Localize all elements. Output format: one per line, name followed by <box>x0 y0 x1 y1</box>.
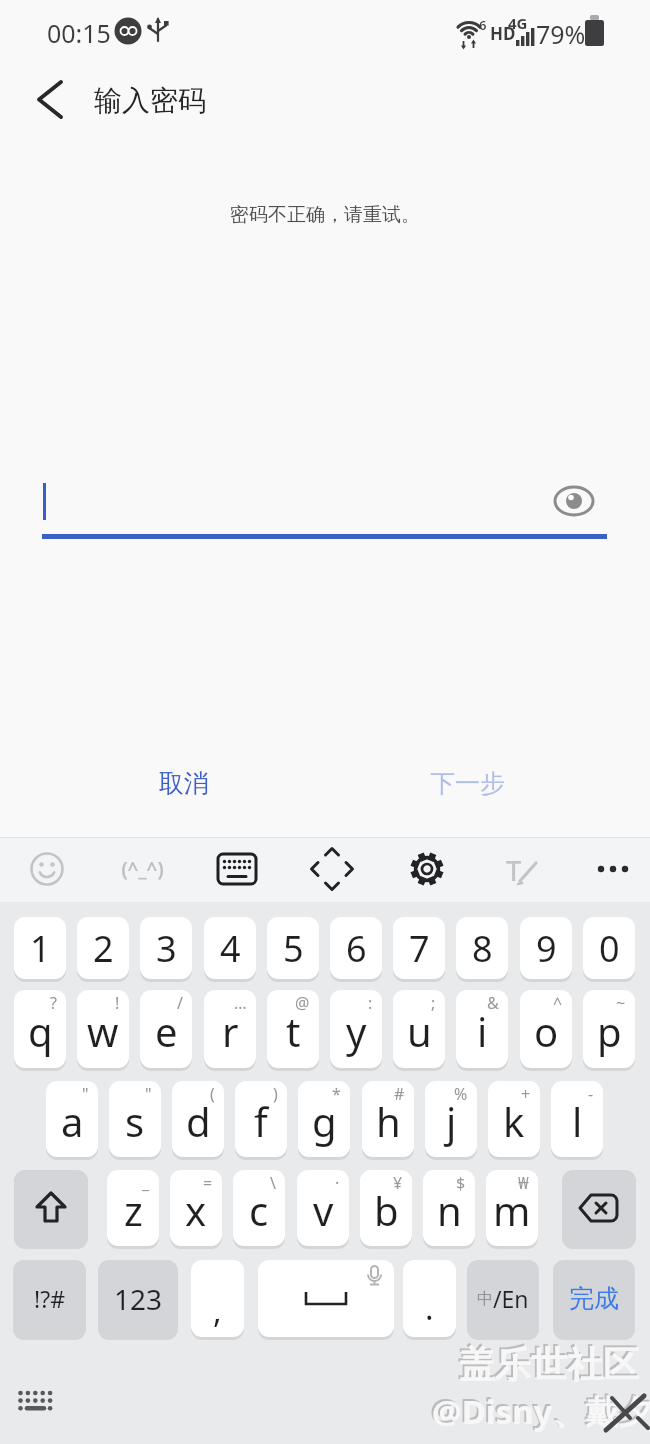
staticText: 密码不正确，请重试。 <box>230 203 420 227</box>
button[interactable]: q <box>14 990 66 1068</box>
staticText: 取消 <box>159 768 209 799</box>
button[interactable] <box>14 1170 88 1246</box>
button[interactable]: 完成 <box>553 1260 635 1337</box>
staticText: (^_^) <box>121 856 164 882</box>
button[interactable]: h <box>362 1081 414 1157</box>
button[interactable]: o <box>520 990 572 1068</box>
button[interactable]: n <box>423 1170 475 1246</box>
button[interactable]: f <box>235 1081 287 1157</box>
staticText: h <box>376 1094 401 1148</box>
button[interactable]: 8 <box>456 917 508 979</box>
staticText: # <box>394 1083 405 1105</box>
button[interactable]: 下一步 <box>392 758 542 808</box>
staticText: = <box>203 1172 213 1194</box>
staticText: ^ <box>553 992 563 1014</box>
button[interactable]: a <box>46 1081 98 1157</box>
button[interactable]: 1 <box>14 917 66 979</box>
staticText: . <box>425 1286 434 1330</box>
button[interactable] <box>562 1170 636 1246</box>
button[interactable]: g <box>298 1081 350 1157</box>
button[interactable]: t <box>267 990 319 1068</box>
staticText: ; <box>431 992 436 1014</box>
button[interactable]: l <box>551 1081 603 1157</box>
staticText: 123 <box>114 1280 163 1318</box>
button[interactable] <box>26 81 74 121</box>
staticText: 00:15 <box>47 16 111 50</box>
button[interactable]: , <box>191 1260 244 1337</box>
button[interactable] <box>16 1388 56 1414</box>
staticText: 下一步 <box>430 768 505 799</box>
button[interactable]: 5 <box>267 917 319 979</box>
button[interactable]: 3 <box>140 917 192 979</box>
staticText: i <box>477 1004 488 1058</box>
staticText: l <box>572 1094 583 1148</box>
staticText: o <box>534 1004 559 1058</box>
button[interactable]: j <box>425 1081 477 1157</box>
button[interactable]: 中 <box>467 1260 539 1337</box>
staticText: 6 <box>479 16 487 34</box>
button[interactable]: r <box>204 990 256 1068</box>
staticText: q <box>28 1004 53 1058</box>
button[interactable] <box>29 851 65 887</box>
button[interactable]: 7 <box>393 917 445 979</box>
button[interactable] <box>407 849 447 889</box>
button[interactable]: 2 <box>77 917 129 979</box>
staticText: r <box>222 1004 239 1058</box>
button[interactable]: d <box>172 1081 224 1157</box>
staticText: z <box>124 1183 143 1237</box>
staticText: 完成 <box>569 1283 619 1314</box>
button[interactable]: . <box>403 1260 456 1337</box>
button[interactable]: T <box>500 851 544 887</box>
button[interactable]: 取消 <box>109 758 259 808</box>
button[interactable]: y <box>330 990 382 1068</box>
button[interactable] <box>553 485 595 519</box>
button[interactable]: u <box>393 990 445 1068</box>
staticText: 盖乐世社区 <box>457 1340 637 1385</box>
staticText: HD <box>490 22 516 45</box>
staticText: _ <box>142 1172 150 1194</box>
button[interactable]: i <box>456 990 508 1068</box>
button[interactable] <box>258 1260 394 1337</box>
button[interactable]: w <box>77 990 129 1068</box>
button[interactable]: 0 <box>583 917 635 979</box>
staticText: d <box>186 1094 211 1148</box>
staticText: ! <box>115 992 120 1014</box>
staticText: 中 <box>477 1289 493 1309</box>
button[interactable]: p <box>583 990 635 1068</box>
staticText: p <box>597 1004 622 1058</box>
button[interactable] <box>310 847 354 891</box>
button[interactable]: 4 <box>204 917 256 979</box>
button[interactable]: !?# <box>13 1260 86 1337</box>
staticText: ~ <box>616 992 626 1014</box>
staticText: ) <box>273 1083 278 1105</box>
staticText: … <box>234 992 247 1014</box>
button[interactable]: 6 <box>330 917 382 979</box>
button[interactable]: z <box>107 1170 159 1246</box>
staticText: c <box>249 1183 269 1237</box>
staticText: ? <box>50 992 57 1014</box>
staticText: u <box>407 1004 432 1058</box>
button[interactable]: (^_^) <box>107 855 177 883</box>
staticText: / <box>177 992 183 1014</box>
button[interactable]: e <box>140 990 192 1068</box>
staticText: b <box>374 1183 399 1237</box>
button[interactable]: c <box>233 1170 285 1246</box>
staticText: @ <box>295 992 310 1014</box>
staticText: 2 <box>93 924 114 973</box>
staticText: e <box>155 1004 178 1058</box>
staticText: @Disny、戴夕 <box>432 1389 650 1434</box>
staticText: j <box>446 1094 457 1148</box>
button[interactable]: k <box>488 1081 540 1157</box>
button[interactable]: s <box>109 1081 161 1157</box>
staticText: f <box>254 1094 268 1148</box>
button[interactable]: 123 <box>98 1260 178 1337</box>
button[interactable]: b <box>360 1170 412 1246</box>
button[interactable]: 9 <box>520 917 572 979</box>
button[interactable]: m <box>486 1170 538 1246</box>
button[interactable] <box>596 862 630 876</box>
button[interactable]: v <box>297 1170 349 1246</box>
staticText: 5 <box>283 924 304 973</box>
staticText: !?# <box>34 1283 66 1314</box>
button[interactable]: x <box>170 1170 222 1246</box>
button[interactable] <box>215 851 259 887</box>
